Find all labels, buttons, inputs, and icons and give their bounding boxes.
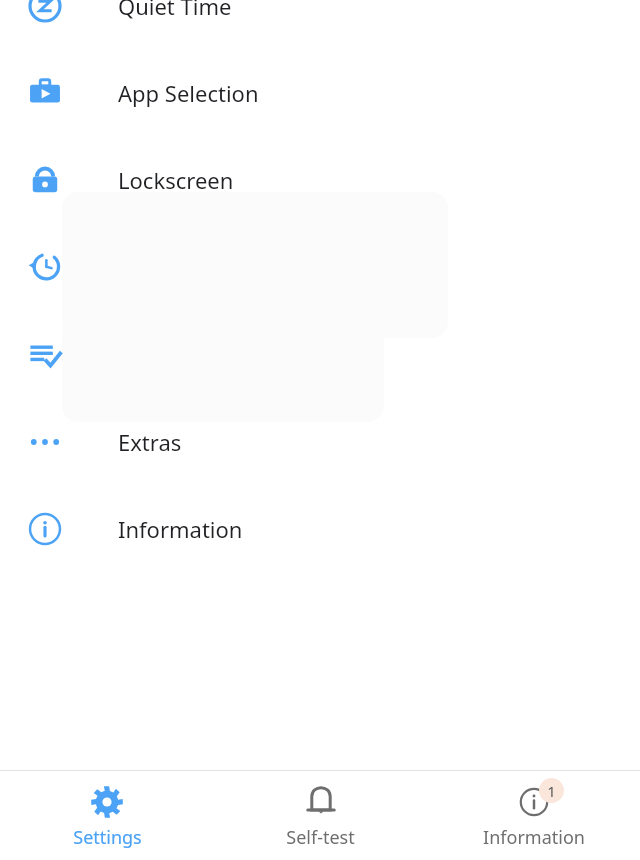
staticText: Quiet Time bbox=[118, 0, 232, 21]
staticText: Extras bbox=[118, 427, 182, 457]
staticText: Lockscreen bbox=[118, 165, 234, 195]
staticText: Settings bbox=[73, 825, 142, 850]
staticText: Information bbox=[118, 514, 243, 544]
button[interactable]: Quiet Time bbox=[0, 0, 640, 49]
button[interactable]: 1 bbox=[427, 771, 640, 860]
button[interactable]: Option bbox=[0, 310, 640, 397]
button[interactable]: Option bbox=[0, 222, 640, 309]
button[interactable]: Extras bbox=[0, 398, 640, 485]
staticText: App Selection bbox=[118, 78, 259, 108]
button[interactable]: App Selection bbox=[0, 49, 640, 136]
staticText: Self-test bbox=[286, 825, 355, 850]
button[interactable]: Lockscreen bbox=[0, 136, 640, 223]
button[interactable]: Settings bbox=[0, 771, 214, 860]
staticText: Information bbox=[483, 825, 585, 850]
staticText: 1 bbox=[547, 781, 556, 801]
button[interactable]: Information bbox=[0, 485, 640, 572]
button[interactable]: Self-test bbox=[214, 771, 427, 860]
